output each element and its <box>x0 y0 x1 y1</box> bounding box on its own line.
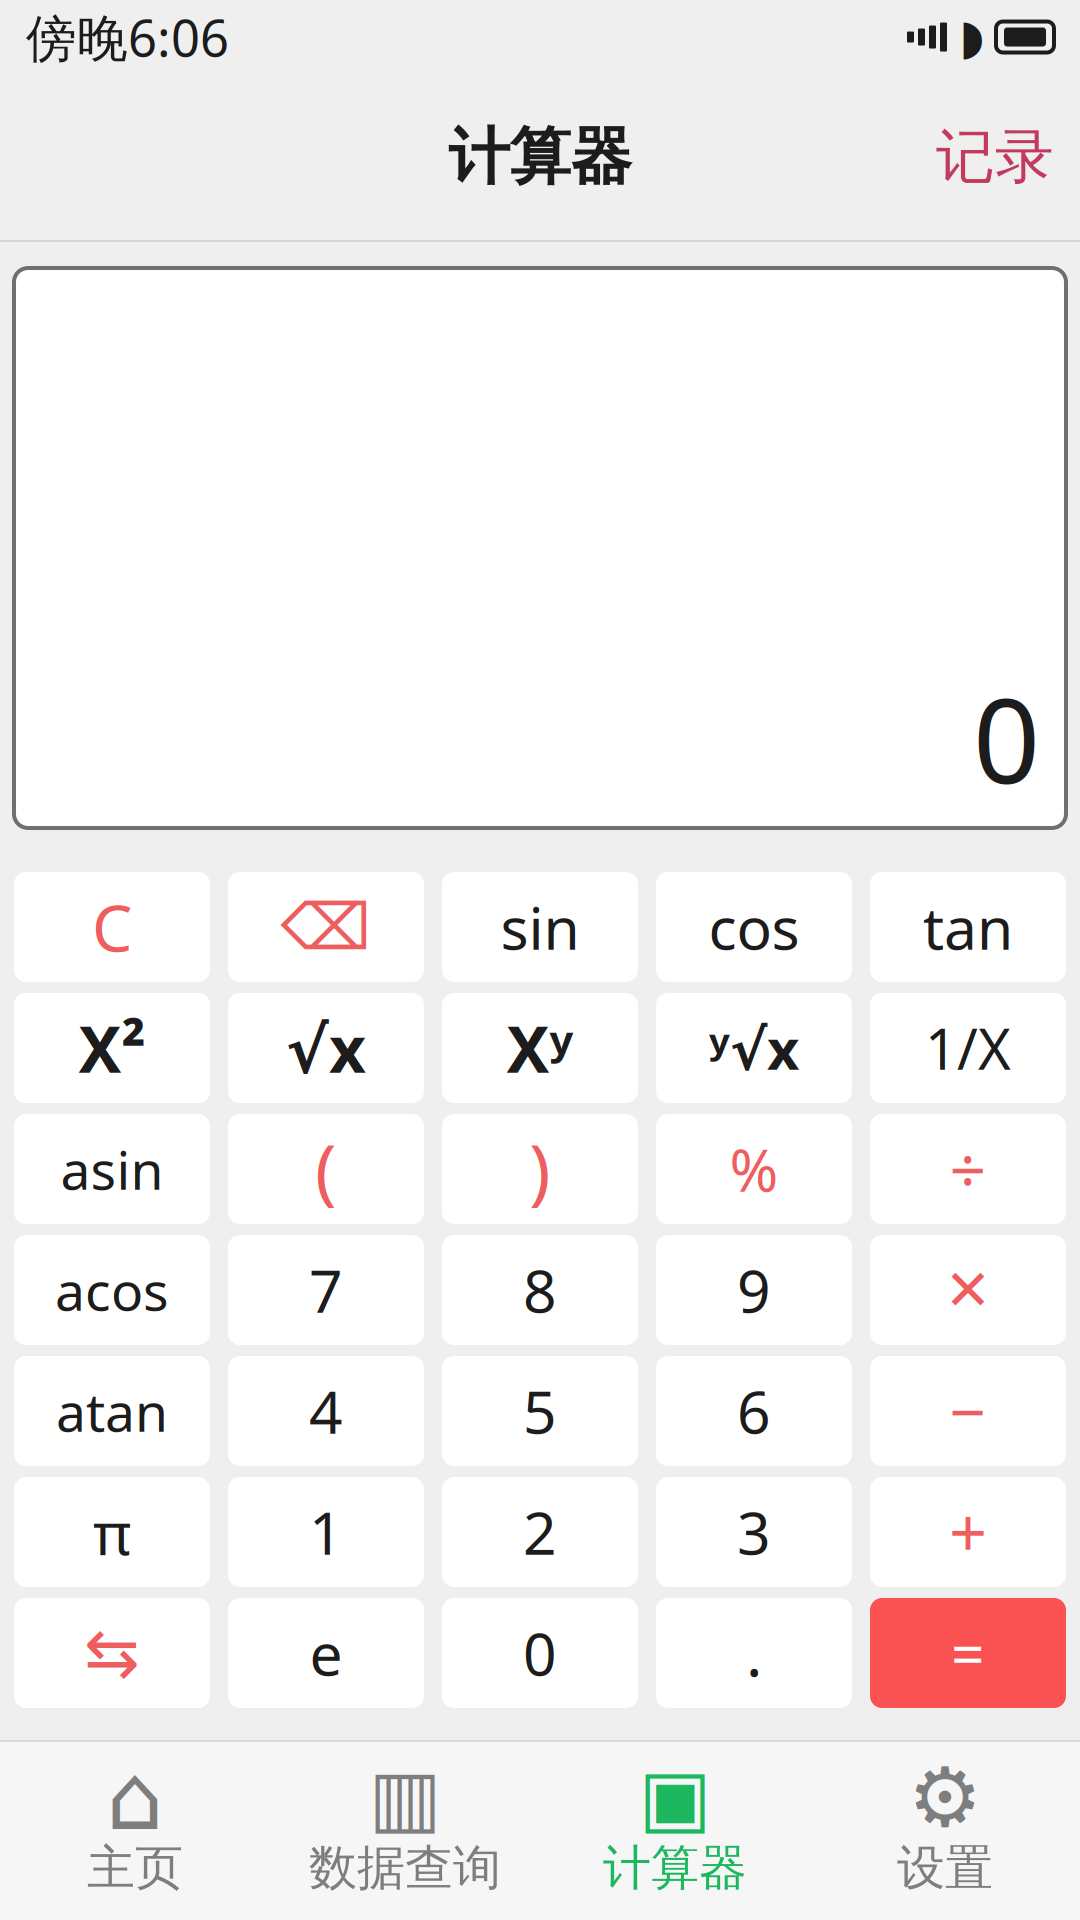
button[interactable]: 6 <box>656 1356 852 1466</box>
button[interactable]: 2 <box>442 1477 638 1587</box>
button[interactable]: atan <box>14 1356 210 1466</box>
staticText: ✕ <box>944 1258 991 1322</box>
staticText: 数据查询 <box>309 1838 501 1897</box>
button[interactable]: X² <box>14 993 210 1103</box>
staticText: . <box>746 1612 762 1694</box>
staticText: π <box>93 1493 131 1571</box>
staticText: ʸ√x <box>709 1011 799 1085</box>
staticText: acos <box>55 1255 169 1325</box>
button[interactable]: Backspace <box>228 872 424 982</box>
staticText: e <box>309 1614 342 1692</box>
staticText: 1 <box>309 1493 343 1571</box>
staticText: 计算器 <box>603 1838 747 1897</box>
button[interactable]: e <box>228 1598 424 1708</box>
staticText: 2 <box>523 1493 557 1571</box>
button[interactable]: + <box>870 1477 1066 1587</box>
button[interactable]: tan <box>870 872 1066 982</box>
button[interactable]: Xʸ <box>442 993 638 1103</box>
button[interactable]: cos <box>656 872 852 982</box>
staticText: 6 <box>737 1372 771 1450</box>
staticText: 1/X <box>925 1011 1011 1085</box>
staticText: = <box>951 1614 985 1692</box>
button[interactable]: − <box>870 1356 1066 1466</box>
button[interactable]: C <box>14 872 210 982</box>
staticText: ( <box>315 1121 337 1217</box>
button[interactable]: 1/X <box>870 993 1066 1103</box>
button[interactable]: ⌂ <box>0 1743 270 1919</box>
staticText: sin <box>500 888 579 966</box>
staticText: 9 <box>737 1251 771 1329</box>
staticText: ⌂ <box>106 1746 164 1849</box>
staticText: − <box>949 1368 986 1453</box>
staticText: ▣ <box>638 1754 711 1841</box>
staticText: 7 <box>309 1251 343 1329</box>
button[interactable]: 9 <box>656 1235 852 1345</box>
staticText: tan <box>923 888 1013 966</box>
button[interactable]: 4 <box>228 1356 424 1466</box>
staticText: % <box>729 1130 778 1208</box>
button[interactable]: sin <box>442 872 638 982</box>
button[interactable]: = <box>870 1598 1066 1708</box>
staticText: 主页 <box>87 1838 183 1897</box>
staticText: Xʸ <box>506 1005 573 1090</box>
button[interactable]: . <box>656 1598 852 1708</box>
staticText: 记录 <box>936 121 1054 193</box>
button[interactable]: ÷ <box>870 1114 1066 1224</box>
staticText: √x <box>286 1005 366 1090</box>
button[interactable]: ▥ <box>270 1743 540 1919</box>
staticText: ) <box>529 1121 551 1217</box>
staticText: 8 <box>523 1251 557 1329</box>
button[interactable]: 8 <box>442 1235 638 1345</box>
button[interactable]: ⚙ <box>810 1743 1080 1919</box>
staticText: 设置 <box>897 1838 993 1897</box>
button[interactable]: 1 <box>228 1477 424 1587</box>
button[interactable]: acos <box>14 1235 210 1345</box>
staticText: asin <box>60 1134 163 1204</box>
staticText: 0 <box>523 1614 557 1692</box>
staticText: + <box>949 1488 987 1576</box>
button[interactable]: √x <box>228 993 424 1103</box>
button[interactable]: 0 <box>442 1598 638 1708</box>
button[interactable]: ✕ <box>870 1235 1066 1345</box>
staticText: 4 <box>309 1372 343 1450</box>
button[interactable]: 3 <box>656 1477 852 1587</box>
staticText: 计算器 <box>448 119 631 195</box>
button[interactable]: π <box>14 1477 210 1587</box>
button[interactable]: ▣ <box>540 1743 810 1919</box>
staticText: ⚙ <box>908 1751 982 1844</box>
button[interactable]: 记录 <box>910 101 1080 213</box>
staticText: C <box>92 884 132 969</box>
button[interactable]: 5 <box>442 1356 638 1466</box>
button[interactable]: Swap <box>14 1598 210 1708</box>
button[interactable]: asin <box>14 1114 210 1224</box>
staticText: 傍晚6:06 <box>26 3 229 71</box>
staticText: cos <box>708 888 799 966</box>
staticText: X² <box>78 1005 145 1090</box>
staticText: ◗ <box>959 10 984 64</box>
staticText: 0 <box>973 660 1040 816</box>
staticText: ⌫ <box>280 891 371 963</box>
button[interactable]: ʸ√x <box>656 993 852 1103</box>
staticText: ▥ <box>368 1754 441 1841</box>
staticText: ⇆ <box>84 1615 140 1691</box>
button[interactable]: ) <box>442 1114 638 1224</box>
button[interactable]: % <box>656 1114 852 1224</box>
staticText: 3 <box>737 1493 771 1571</box>
button[interactable]: 7 <box>228 1235 424 1345</box>
staticText: 5 <box>523 1372 557 1450</box>
staticText: ÷ <box>949 1126 986 1211</box>
staticText: atan <box>56 1376 168 1446</box>
button[interactable]: ( <box>228 1114 424 1224</box>
